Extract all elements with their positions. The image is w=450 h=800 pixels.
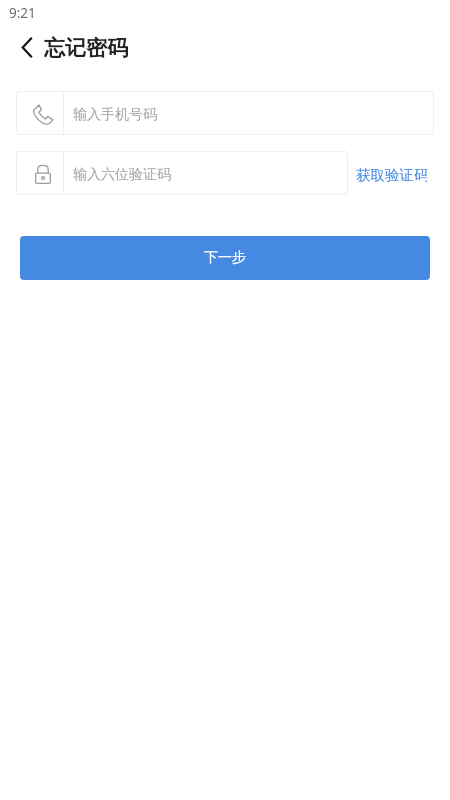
staticText: 获取验证码 (356, 166, 427, 184)
staticText: 忘记密码 (44, 35, 128, 61)
staticText: 下一步 (204, 249, 246, 267)
button[interactable]: Back (4, 30, 48, 66)
button[interactable]: 输入手机号码 (16, 91, 434, 135)
button[interactable]: 下一步 (20, 236, 430, 280)
button[interactable]: 输入六位验证码 (16, 151, 348, 195)
button[interactable]: 获取验证码 (348, 151, 450, 195)
staticText: 9:21 (9, 4, 36, 22)
staticText: 输入六位验证码 (73, 166, 171, 184)
staticText: 输入手机号码 (73, 106, 157, 124)
